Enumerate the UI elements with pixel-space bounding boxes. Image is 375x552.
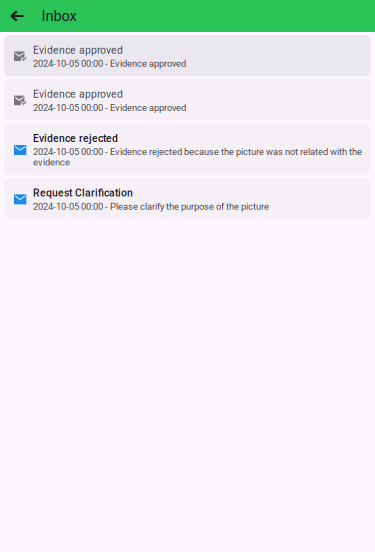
button[interactable]: Evidence approved: [4, 35, 371, 76]
staticText: Request Clarification: [33, 187, 133, 199]
staticText: 2024-10-05 00:00 - Evidence approved: [33, 58, 186, 69]
staticText: 2024-10-05 00:00 - Evidence rejected bec…: [33, 146, 362, 168]
button[interactable]: Evidence approved: [4, 79, 371, 120]
staticText: Evidence approved: [33, 88, 123, 100]
staticText: 2024-10-05 00:00 - Evidence approved: [33, 102, 186, 113]
staticText: Evidence approved: [33, 44, 123, 56]
button[interactable]: Evidence rejected: [4, 123, 371, 175]
staticText: Evidence rejected: [33, 132, 118, 144]
button[interactable]: Back: [0, 0, 42, 32]
button[interactable]: Request Clarification: [4, 178, 371, 219]
staticText: 2024-10-05 00:00 - Please clarify the pu…: [33, 201, 269, 212]
staticText: Inbox: [42, 7, 77, 25]
